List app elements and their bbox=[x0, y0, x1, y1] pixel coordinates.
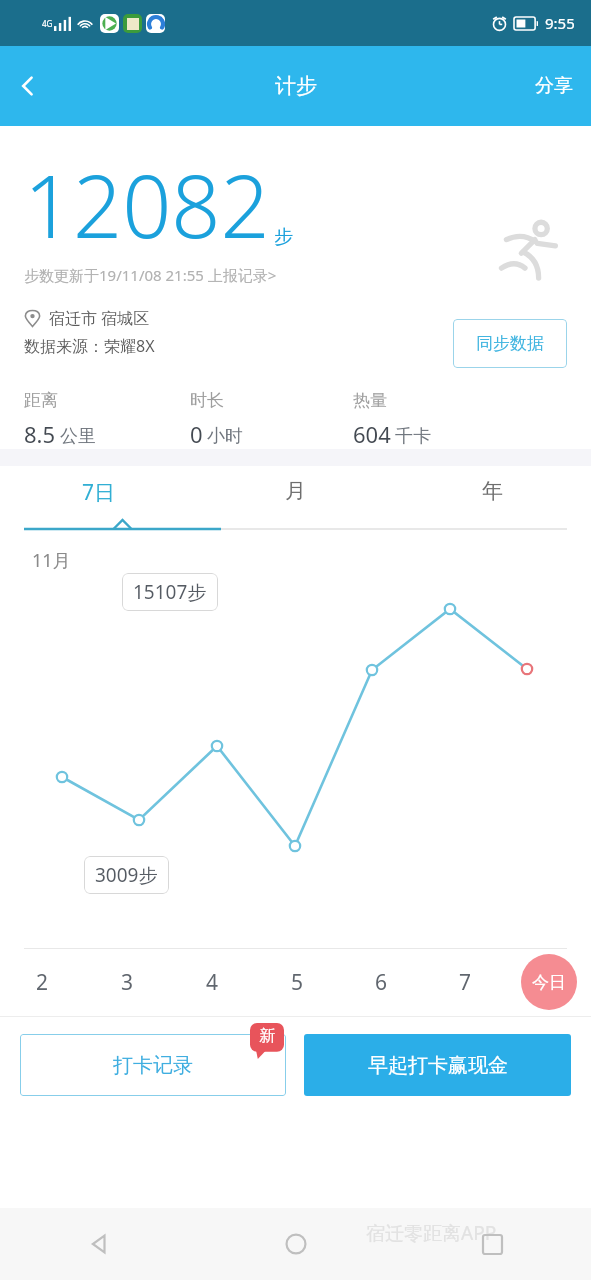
staticText: 8.5 bbox=[24, 419, 56, 449]
staticText: 11月 bbox=[32, 548, 71, 573]
button[interactable]: Home bbox=[197, 1208, 394, 1280]
button[interactable]: 7 bbox=[423, 949, 507, 1015]
button[interactable]: 5 bbox=[255, 949, 339, 1015]
staticText: 0 bbox=[190, 419, 203, 449]
staticText: 公里 bbox=[60, 425, 96, 448]
staticText: 打卡记录 bbox=[113, 1053, 193, 1078]
button[interactable]: 打卡记录 bbox=[20, 1034, 286, 1096]
staticText: 计步 bbox=[275, 73, 317, 99]
button[interactable]: 月 bbox=[197, 478, 394, 536]
button[interactable]: 同步数据 bbox=[453, 319, 567, 368]
staticText: 4 bbox=[206, 968, 219, 997]
staticText: 新 bbox=[259, 1026, 275, 1046]
button[interactable]: 6 bbox=[339, 949, 423, 1015]
staticText: 步数更新于19/11/08 21:55 上报记录> bbox=[24, 265, 277, 285]
button[interactable]: 2 bbox=[0, 949, 85, 1015]
staticText: 数据来源：荣耀8X bbox=[24, 335, 155, 357]
staticText: 12082 bbox=[24, 146, 270, 263]
staticText: 分享 bbox=[535, 74, 573, 98]
button[interactable]: Recent apps bbox=[394, 1208, 591, 1280]
button[interactable]: 4 bbox=[170, 949, 255, 1015]
staticText: 年 bbox=[482, 478, 503, 504]
staticText: 小时 bbox=[207, 425, 243, 448]
staticText: 早起打卡赢现金 bbox=[368, 1053, 508, 1078]
button[interactable]: Back bbox=[0, 58, 56, 114]
staticText: 3 bbox=[121, 968, 134, 997]
staticText: 宿迁零距离APP bbox=[366, 1220, 497, 1246]
staticText: 今日 bbox=[532, 972, 566, 993]
staticText: 距离 bbox=[24, 390, 58, 411]
staticText: 同步数据 bbox=[476, 333, 544, 354]
staticText: 热量 bbox=[353, 390, 387, 411]
staticText: 千卡 bbox=[395, 425, 431, 448]
button[interactable]: Back bbox=[0, 1208, 197, 1280]
staticText: 9:55 bbox=[545, 13, 575, 33]
staticText: 15107步 bbox=[133, 579, 207, 605]
staticText: 604 bbox=[353, 419, 391, 449]
button[interactable]: 年 bbox=[394, 478, 591, 536]
staticText: 步 bbox=[274, 225, 293, 249]
staticText: 6 bbox=[375, 968, 388, 997]
button[interactable]: 3 bbox=[85, 949, 170, 1015]
button[interactable]: 今日 bbox=[521, 954, 577, 1010]
button[interactable]: 分享 bbox=[517, 60, 591, 112]
staticText: 3009步 bbox=[95, 862, 158, 888]
staticText: 7日 bbox=[82, 478, 116, 507]
button[interactable]: 7日 bbox=[0, 478, 197, 536]
staticText: 4G bbox=[42, 18, 53, 29]
button[interactable]: 步数更新于19/11/08 21:55 上报记录> bbox=[24, 265, 277, 285]
button[interactable]: 早起打卡赢现金 bbox=[304, 1034, 571, 1096]
staticText: 7 bbox=[459, 968, 472, 997]
staticText: 5 bbox=[291, 968, 304, 997]
staticText: 2 bbox=[36, 968, 49, 997]
staticText: 月 bbox=[285, 478, 306, 504]
staticText: 宿迁市 宿城区 bbox=[49, 307, 150, 329]
staticText: 时长 bbox=[190, 390, 224, 411]
